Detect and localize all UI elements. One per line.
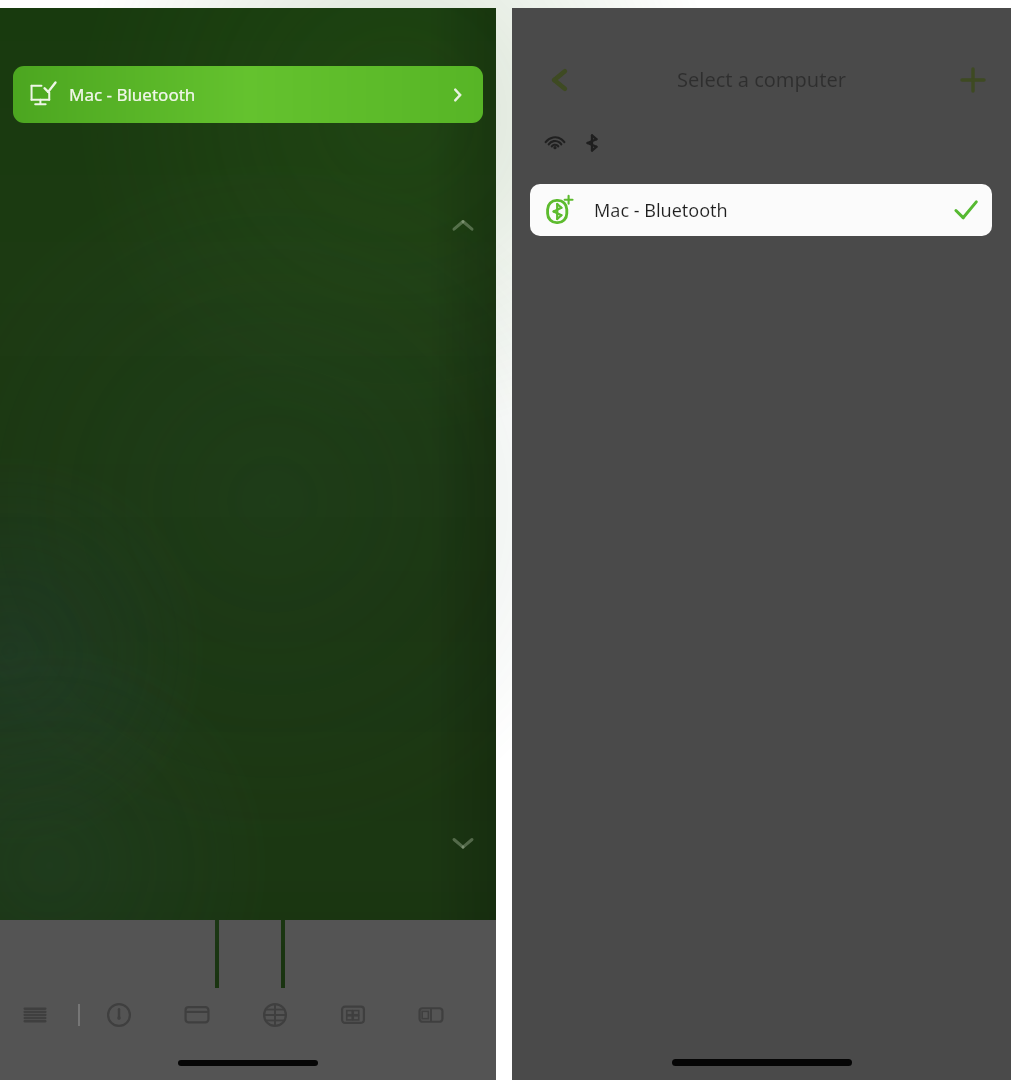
staticText: Mac - Bluetooth	[69, 83, 196, 106]
other: Scroll down	[452, 836, 474, 850]
other: Bluetooth	[582, 133, 602, 153]
button[interactable]: Record	[102, 998, 136, 1032]
button[interactable]: Split view	[414, 998, 448, 1032]
button[interactable]: Back	[538, 58, 582, 102]
other: Wi-Fi	[544, 132, 566, 154]
button[interactable]: Mac - Bluetooth	[13, 66, 483, 123]
other: Scroll up	[452, 218, 474, 232]
button[interactable]: Browser	[258, 998, 292, 1032]
button[interactable]: Window	[180, 998, 214, 1032]
button[interactable]: Mac - Bluetooth	[530, 184, 992, 236]
button[interactable]: Menu	[18, 998, 52, 1032]
staticText: Select a computer	[512, 66, 1011, 93]
button[interactable]: Apps	[336, 998, 370, 1032]
button[interactable]: Add computer	[951, 58, 995, 102]
staticText: Mac - Bluetooth	[594, 198, 728, 223]
